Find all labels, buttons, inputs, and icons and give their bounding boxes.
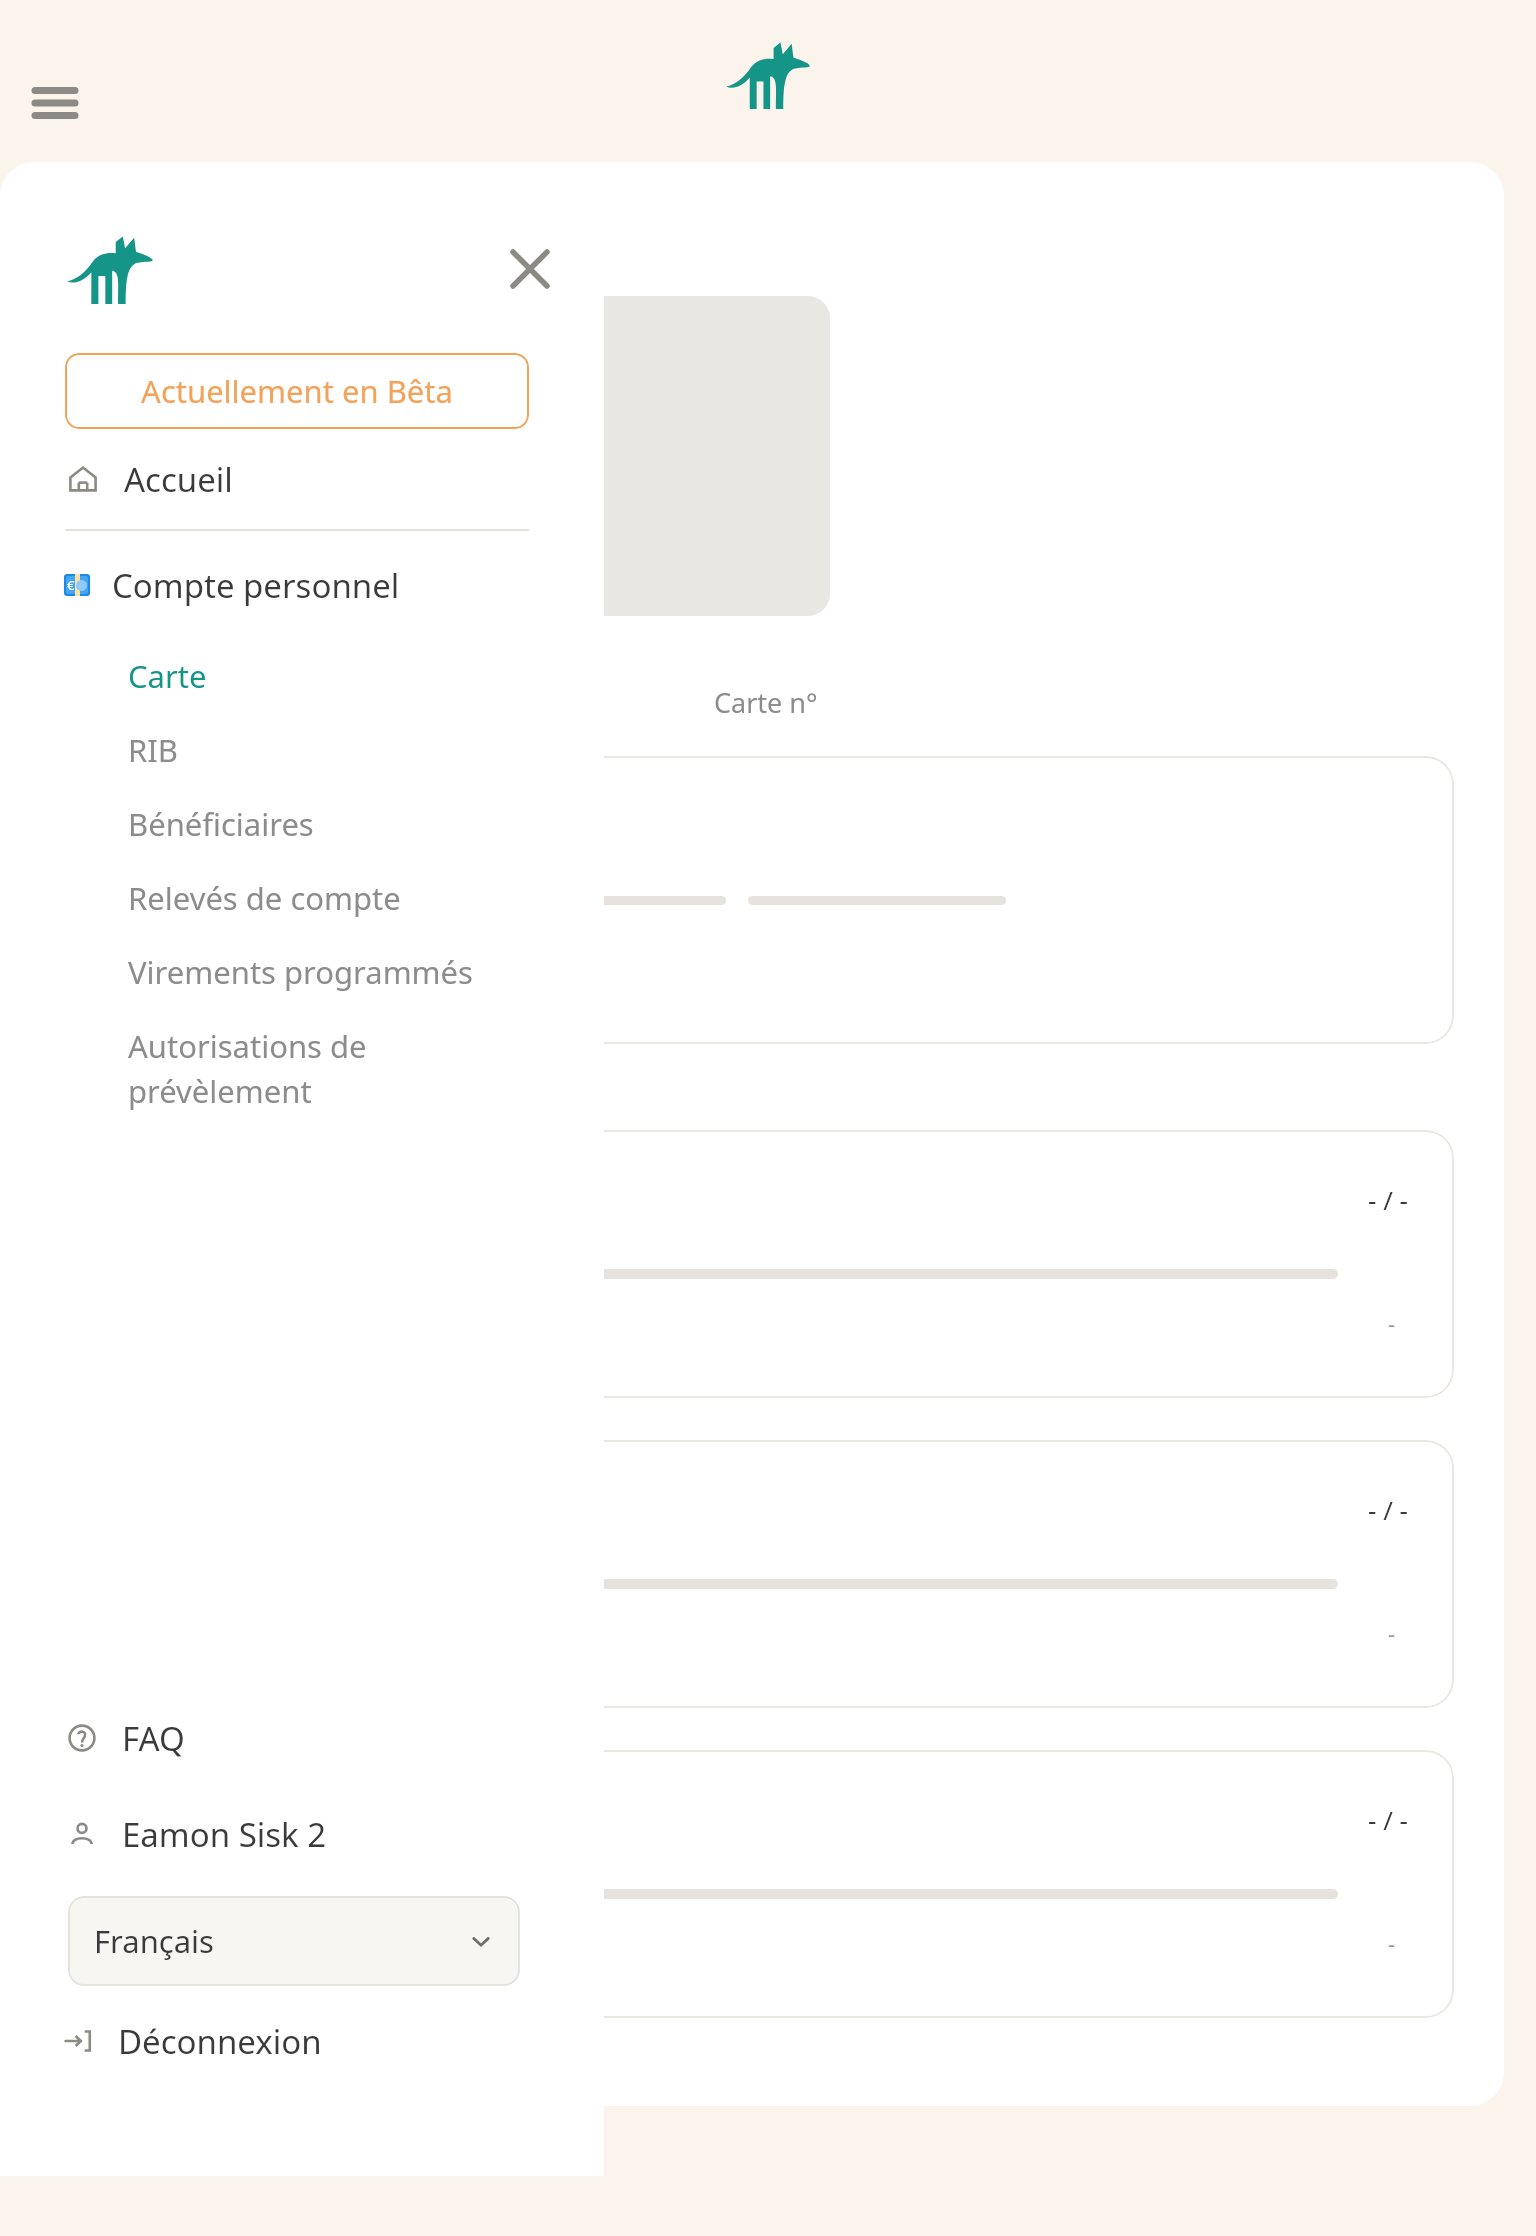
staticText: Carte n° bbox=[714, 684, 818, 721]
button[interactable]: Menu bbox=[18, 66, 92, 140]
staticText: Compte personnel bbox=[112, 563, 400, 608]
staticText: Bénéficiaires bbox=[128, 803, 314, 845]
button[interactable]: Français bbox=[68, 1896, 520, 1986]
button[interactable]: Déconnexion bbox=[0, 1986, 604, 2096]
staticText: Déconnexion bbox=[118, 2019, 322, 2064]
staticText: Français bbox=[94, 1920, 214, 1962]
staticText: RIB bbox=[128, 729, 178, 771]
staticText: Accueil bbox=[124, 457, 233, 502]
staticText: Actuellement en Bêta bbox=[141, 370, 453, 412]
button[interactable]: Accueil bbox=[0, 429, 604, 529]
button[interactable]: Virements programmés bbox=[0, 935, 604, 1009]
staticText: Relevés de compte bbox=[128, 877, 401, 919]
staticText: Eamon Sisk 2 bbox=[122, 1812, 327, 1857]
button[interactable]: € bbox=[0, 531, 604, 639]
button[interactable]: Autorisations de prévèlement bbox=[0, 1009, 604, 1128]
staticText: - / - bbox=[1368, 1182, 1408, 1217]
staticText: - bbox=[1388, 1618, 1396, 1648]
staticText: - bbox=[1388, 1308, 1396, 1338]
staticText: - / - bbox=[1368, 1802, 1408, 1837]
button[interactable]: Carte bbox=[0, 639, 604, 713]
staticText: Virements programmés bbox=[128, 951, 473, 993]
button[interactable]: Relevés de compte bbox=[0, 861, 604, 935]
button[interactable]: RIB bbox=[0, 713, 604, 787]
staticText: FAQ bbox=[122, 1716, 185, 1761]
staticText: Autorisations de prévèlement bbox=[128, 1025, 367, 1112]
staticText: - bbox=[1388, 1928, 1396, 1958]
staticText: - / - bbox=[1368, 1492, 1408, 1527]
staticText: € bbox=[67, 576, 75, 594]
button[interactable]: FAQ bbox=[0, 1690, 604, 1786]
button[interactable]: Bénéficiaires bbox=[0, 787, 604, 861]
button[interactable]: Actuellement en Bêta bbox=[65, 353, 529, 429]
button[interactable]: Eamon Sisk 2 bbox=[0, 1786, 604, 1882]
button[interactable]: Fermer bbox=[500, 239, 560, 299]
staticText: Carte bbox=[128, 655, 207, 697]
